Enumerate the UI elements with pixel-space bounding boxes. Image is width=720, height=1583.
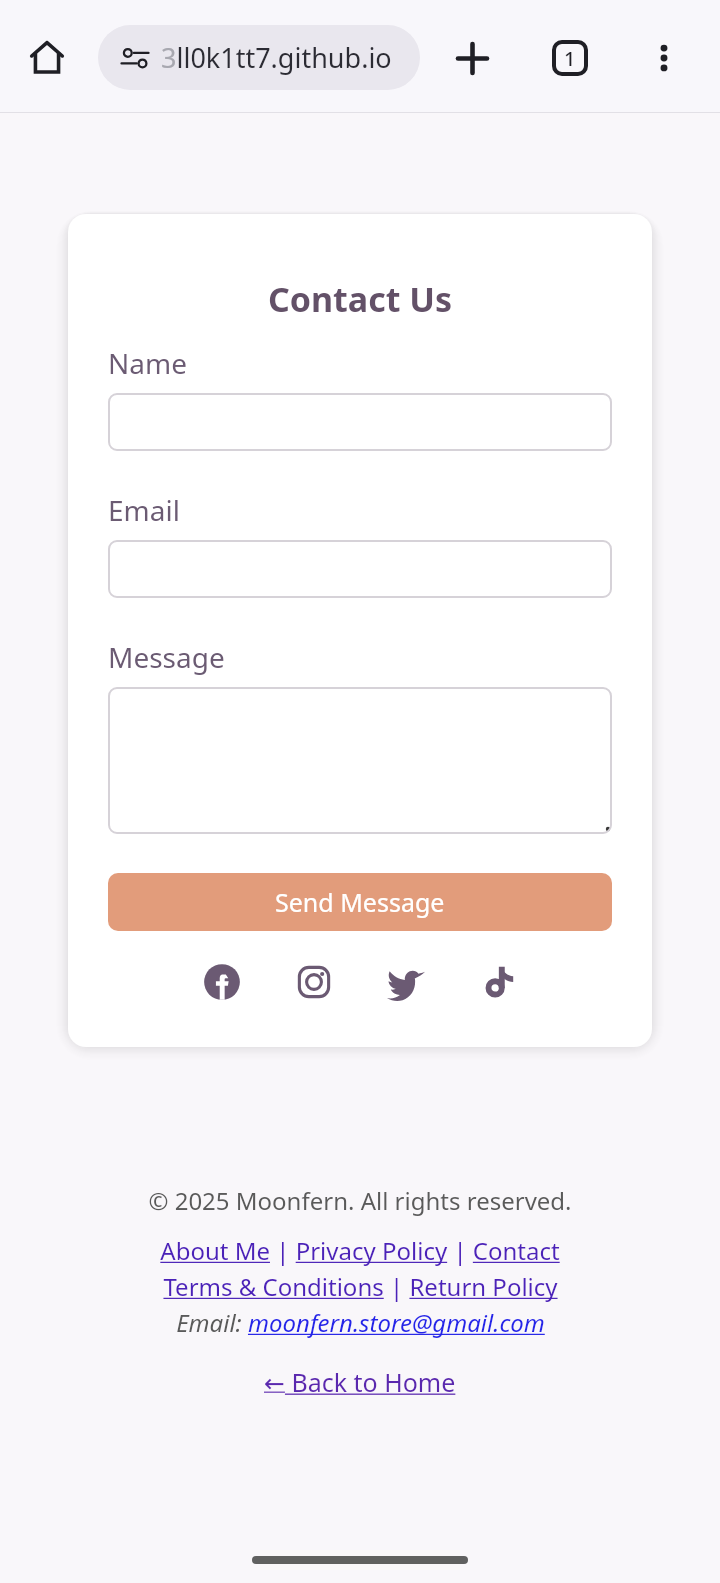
button[interactable] [108, 393, 612, 451]
staticText: Send Message [275, 885, 445, 919]
staticText: © 2025 Moonfern. All rights reserved. [148, 1184, 572, 1217]
staticText: Contact Us [108, 276, 612, 322]
button[interactable]: TikTok [479, 963, 517, 1001]
staticText: About Me | Privacy Policy | Contact [160, 1234, 560, 1267]
staticText: Terms & Conditions | Return Policy [163, 1270, 558, 1303]
staticText: Name [108, 344, 187, 382]
button[interactable]: About Me | Privacy Policy | Contact [160, 1234, 560, 1267]
button[interactable]: ← Back to Home [264, 1365, 456, 1399]
button[interactable]: Email: moonfern.store@gmail.com [176, 1306, 545, 1339]
staticText: 3ll0k1tt7.github.io [161, 39, 392, 76]
staticText: ← Back to Home [264, 1365, 456, 1399]
button[interactable]: Instagram [295, 963, 333, 1001]
button[interactable]: Home [24, 34, 70, 80]
button[interactable]: New tab [449, 35, 495, 81]
button[interactable]: More options [641, 35, 687, 81]
button[interactable]: 3ll0k1tt7.github.io [98, 25, 420, 90]
button[interactable]: Terms & Conditions | Return Policy [163, 1270, 558, 1303]
staticText: Email: moonfern.store@gmail.com [176, 1306, 545, 1339]
staticText: Message [108, 638, 225, 676]
button[interactable]: Twitter [387, 963, 425, 1001]
staticText: Email [108, 491, 180, 529]
button[interactable]: Send Message [108, 873, 612, 931]
button[interactable] [108, 540, 612, 598]
staticText: 1 [564, 45, 576, 72]
button[interactable]: Facebook [203, 963, 241, 1001]
button[interactable] [108, 687, 612, 834]
button[interactable]: Switch tabs [547, 35, 593, 81]
